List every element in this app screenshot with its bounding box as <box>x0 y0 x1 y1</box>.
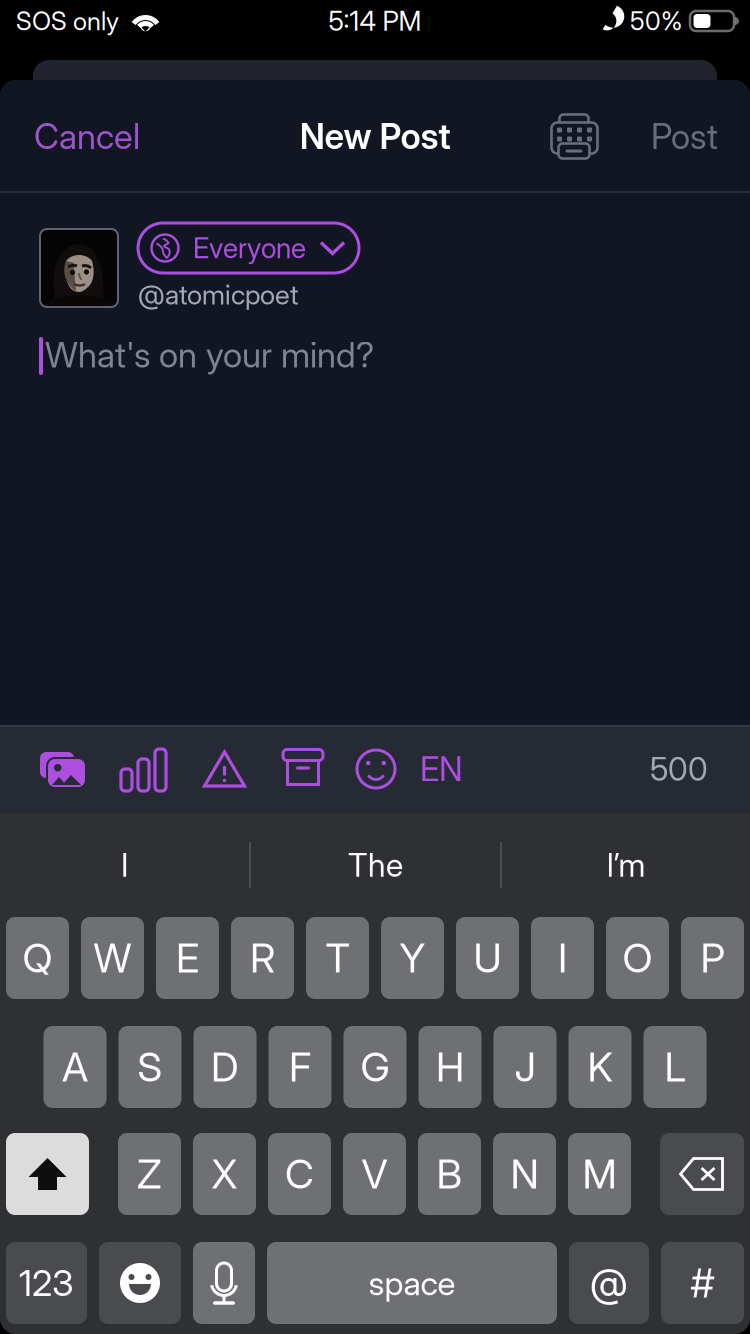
staticText: W <box>93 934 131 982</box>
button[interactable]: Dictate <box>193 1242 255 1324</box>
button[interactable]: U <box>456 917 519 999</box>
button[interactable]: I <box>0 813 249 917</box>
staticText: D <box>211 1043 239 1091</box>
button[interactable]: R <box>231 917 294 999</box>
staticText: H <box>436 1043 464 1091</box>
staticText: R <box>250 934 275 982</box>
staticText: I <box>558 934 567 982</box>
button[interactable]: Keyboard <box>520 80 629 193</box>
button[interactable]: C <box>268 1133 331 1215</box>
staticText: A <box>62 1043 88 1091</box>
button[interactable]: # <box>661 1242 744 1324</box>
staticText: New Post <box>299 115 450 157</box>
button[interactable]: Y <box>381 917 444 999</box>
staticText: P <box>700 934 724 982</box>
staticText: 5:14 PM <box>328 5 421 37</box>
staticText: 123 <box>19 1261 74 1305</box>
staticText: G <box>360 1043 389 1091</box>
staticText: X <box>211 1150 237 1198</box>
button[interactable]: Content warning <box>202 748 247 790</box>
button[interactable]: A <box>43 1026 106 1108</box>
button[interactable]: F <box>268 1026 331 1108</box>
staticText: F <box>289 1043 311 1091</box>
staticText: Z <box>137 1150 162 1198</box>
button[interactable]: Post <box>629 80 750 193</box>
staticText: Post <box>651 115 718 157</box>
button[interactable]: W <box>81 917 144 999</box>
staticText: What's on your mind? <box>45 334 374 376</box>
staticText: The <box>348 846 403 884</box>
button[interactable]: 123 <box>6 1242 87 1324</box>
staticText: space <box>368 1263 455 1303</box>
staticText: Cancel <box>34 115 140 157</box>
button[interactable]: J <box>493 1026 556 1108</box>
staticText: J <box>514 1043 535 1091</box>
button[interactable]: B <box>418 1133 481 1215</box>
button[interactable]: Archive <box>281 748 325 790</box>
button[interactable]: space <box>267 1242 557 1324</box>
button[interactable]: V <box>343 1133 406 1215</box>
button[interactable]: I <box>531 917 594 999</box>
button[interactable]: G <box>343 1026 406 1108</box>
button[interactable]: N <box>493 1133 556 1215</box>
button[interactable]: Q <box>6 917 69 999</box>
staticText: K <box>587 1043 612 1091</box>
button[interactable]: Cancel <box>0 80 162 193</box>
staticText: C <box>285 1150 314 1198</box>
button[interactable]: T <box>306 917 369 999</box>
button[interactable]: I’m <box>502 813 750 917</box>
button[interactable]: X <box>193 1133 256 1215</box>
button[interactable]: K <box>568 1026 631 1108</box>
staticText: 500 <box>650 750 708 788</box>
button[interactable]: Emoji <box>355 748 397 790</box>
staticText: E <box>176 934 199 982</box>
button[interactable]: EN <box>420 747 463 791</box>
staticText: SOS only <box>16 6 119 36</box>
button[interactable]: M <box>568 1133 631 1215</box>
button[interactable]: Everyone <box>138 223 359 273</box>
button[interactable]: O <box>606 917 669 999</box>
staticText: B <box>436 1150 462 1198</box>
staticText: U <box>473 934 501 982</box>
staticText: V <box>361 1150 387 1198</box>
staticText: Y <box>399 934 425 982</box>
staticText: N <box>510 1150 538 1198</box>
staticText: O <box>622 934 652 982</box>
staticText: I <box>121 846 128 884</box>
staticText: # <box>690 1259 714 1307</box>
button[interactable]: Backspace <box>660 1133 744 1215</box>
staticText: T <box>325 934 349 982</box>
staticText: L <box>664 1043 685 1091</box>
staticText: I’m <box>606 846 645 884</box>
staticText: Everyone <box>193 231 306 265</box>
button[interactable]: Shift <box>6 1133 89 1215</box>
staticText: M <box>582 1150 616 1198</box>
button[interactable]: S <box>118 1026 181 1108</box>
button[interactable]: H <box>418 1026 481 1108</box>
button[interactable]: Add poll <box>121 747 166 791</box>
button[interactable]: E <box>156 917 219 999</box>
staticText: @ <box>590 1260 628 1306</box>
button[interactable]: Add photo <box>38 747 88 791</box>
staticText: 50% <box>630 6 682 36</box>
button[interactable]: D <box>193 1026 256 1108</box>
button[interactable]: The <box>251 813 500 917</box>
staticText: EN <box>420 749 463 789</box>
button[interactable]: Emoji <box>99 1242 181 1324</box>
button[interactable]: P <box>681 917 744 999</box>
button[interactable]: @ <box>569 1242 649 1324</box>
button[interactable]: Z <box>118 1133 181 1215</box>
button[interactable]: L <box>643 1026 706 1108</box>
staticText: @atomicpoet <box>138 278 299 311</box>
staticText: S <box>137 1043 162 1091</box>
staticText: Q <box>22 934 52 982</box>
